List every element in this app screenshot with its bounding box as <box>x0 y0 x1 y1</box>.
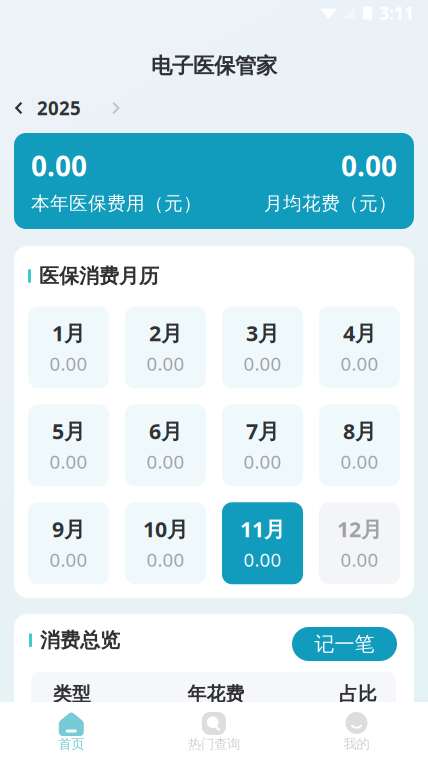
button[interactable]: 8月 <box>319 404 400 486</box>
staticText: 8月 <box>343 417 376 445</box>
staticText: 7月 <box>246 417 279 445</box>
staticText: 2025 <box>37 96 81 120</box>
staticText: 12月 <box>337 515 382 543</box>
staticText: 0.00 <box>243 449 281 474</box>
staticText: 3月 <box>246 319 279 347</box>
staticText: 记一笔 <box>314 632 374 656</box>
staticText: 6月 <box>149 417 182 445</box>
button[interactable]: 下一年 <box>101 93 131 123</box>
staticText: 3:11 <box>379 1 414 24</box>
staticText: 电子医保管家 <box>151 53 277 79</box>
staticText: 2月 <box>149 319 182 347</box>
staticText: 0.00 <box>31 147 87 184</box>
staticText: 我的 <box>343 736 369 752</box>
button[interactable]: 4月 <box>319 306 400 388</box>
staticText: 首页 <box>58 736 84 752</box>
staticText: 热门查询 <box>188 736 240 752</box>
button[interactable]: 11月 <box>222 502 303 584</box>
staticText: 4月 <box>343 319 376 347</box>
staticText: 占比 <box>339 682 377 705</box>
button[interactable]: 9月 <box>28 502 109 584</box>
button[interactable]: 2月 <box>125 306 206 388</box>
staticText: 0.00 <box>49 449 87 474</box>
staticText: 0.00 <box>340 547 378 572</box>
staticText: 0.00 <box>146 449 184 474</box>
button[interactable]: 5月 <box>28 404 109 486</box>
staticText: 0.00 <box>340 351 378 376</box>
button[interactable]: 热门查询 <box>143 702 285 762</box>
staticText: 本年医保费用（元） <box>31 192 202 215</box>
staticText: 0.00 <box>340 449 378 474</box>
staticText: 0.00 <box>146 547 184 572</box>
staticText: 10月 <box>143 515 188 543</box>
staticText: 0.00 <box>146 351 184 376</box>
button[interactable]: 记一笔 <box>292 627 397 661</box>
staticText: 0.00 <box>243 547 281 572</box>
staticText: 消费总览 <box>40 628 120 653</box>
staticText: 0.00 <box>243 351 281 376</box>
staticText: 5月 <box>52 417 85 445</box>
staticText: 医保消费月历 <box>39 264 159 288</box>
staticText: 月均花费（元） <box>264 192 397 215</box>
button[interactable]: 我的 <box>285 702 428 762</box>
button[interactable]: 1月 <box>28 306 109 388</box>
button[interactable]: 6月 <box>125 404 206 486</box>
staticText: 11月 <box>240 515 285 543</box>
staticText: 1月 <box>52 319 85 347</box>
staticText: 0.00 <box>49 351 87 376</box>
button[interactable]: 3月 <box>222 306 303 388</box>
staticText: 0.00 <box>49 547 87 572</box>
button[interactable]: 12月 <box>319 502 400 584</box>
button[interactable]: 首页 <box>0 702 143 762</box>
button[interactable]: 7月 <box>222 404 303 486</box>
button[interactable]: 上一年 <box>4 93 34 123</box>
staticText: 年花费 <box>187 682 244 705</box>
staticText: 0.00 <box>341 147 397 184</box>
button[interactable]: 10月 <box>125 502 206 584</box>
staticText: 9月 <box>52 515 85 543</box>
staticText: 类型 <box>53 682 91 705</box>
